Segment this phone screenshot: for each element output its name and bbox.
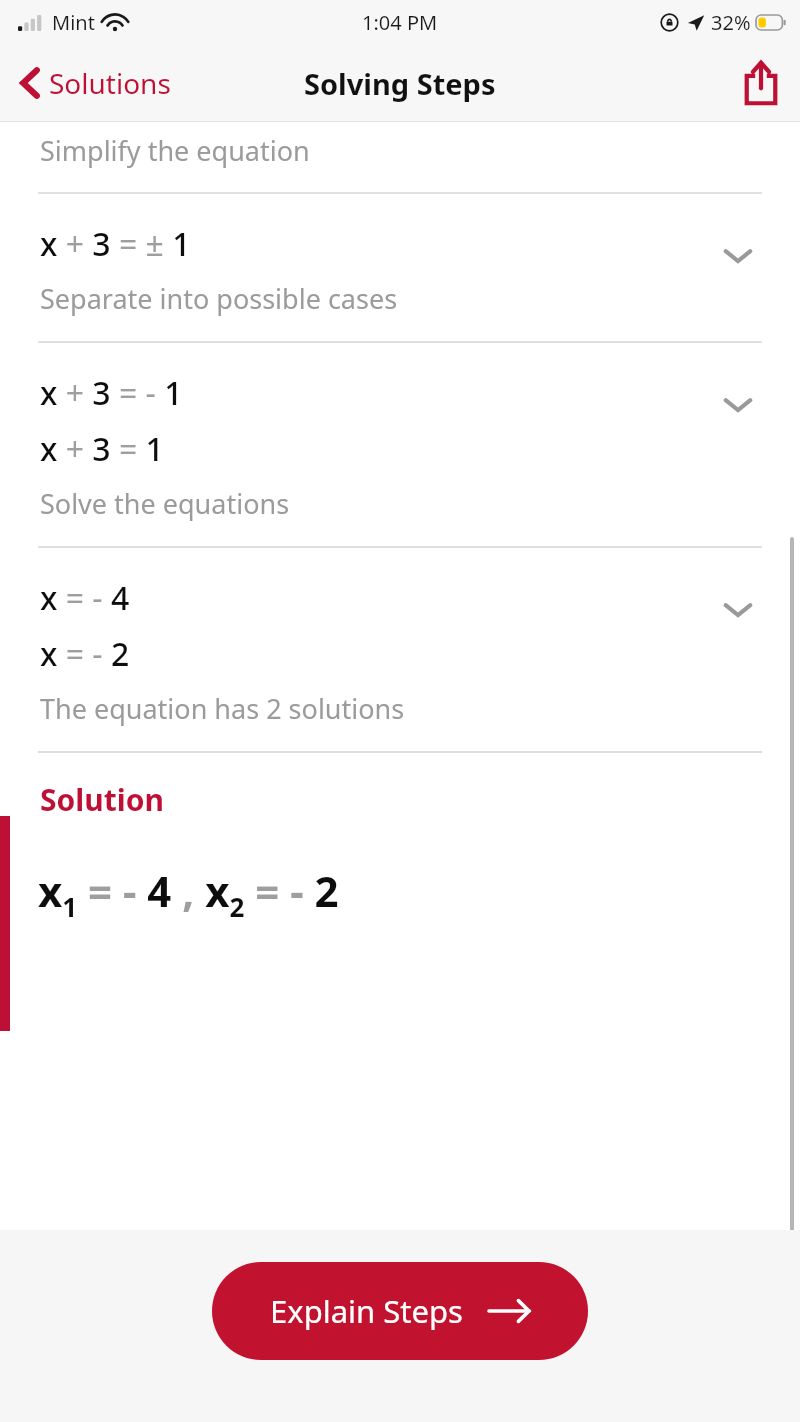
staticText: Solutions xyxy=(49,64,171,102)
staticText: x1 = - 4 , x2 = - 2 xyxy=(38,862,339,925)
staticText: Simplify the equation xyxy=(40,132,310,169)
button[interactable]: x + 3 = ± 1 xyxy=(0,194,800,341)
staticText: Solve the equations xyxy=(40,485,290,522)
staticText: Separate into possible cases xyxy=(40,280,398,317)
staticText: Mint xyxy=(52,9,95,36)
staticText: Solution xyxy=(40,779,164,820)
staticText: x + 3 = ± 1 xyxy=(40,222,191,266)
button[interactable]: Expand step xyxy=(716,234,760,278)
staticText: The equation has 2 solutions xyxy=(40,690,405,727)
staticText: x = - 4 xyxy=(40,576,130,620)
button[interactable]: x = - 4 xyxy=(0,548,800,751)
button[interactable]: Explain Steps xyxy=(212,1262,588,1360)
staticText: Solving Steps xyxy=(304,64,496,103)
staticText: x = - 2 xyxy=(40,632,130,676)
staticText: x + 3 = - 1 xyxy=(40,371,183,415)
staticText: x + 3 = 1 xyxy=(40,427,164,471)
button[interactable]: x + 3 = - 1 xyxy=(0,343,800,546)
button[interactable]: Expand step xyxy=(716,588,760,632)
staticText: Explain Steps xyxy=(270,1290,463,1332)
staticText: 1:04 PM xyxy=(362,9,438,36)
button[interactable]: Expand step xyxy=(716,383,760,427)
button[interactable]: Share xyxy=(722,49,800,117)
staticText: 32% xyxy=(711,9,751,36)
button[interactable]: Solutions xyxy=(0,56,185,110)
